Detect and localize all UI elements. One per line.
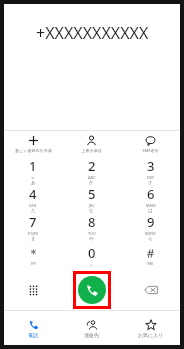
staticText: JKL — [89, 203, 95, 208]
button[interactable]: 0 — [62, 241, 121, 269]
staticText: PQRS — [28, 231, 39, 236]
staticText: 5 — [88, 185, 96, 203]
staticText: 連絡先 — [84, 332, 99, 338]
button[interactable]: ＊ — [4, 241, 62, 269]
button[interactable]: 5 — [62, 185, 121, 213]
staticText: や — [89, 236, 94, 241]
button[interactable]: 7 — [4, 213, 62, 241]
button[interactable]: 6 — [121, 185, 180, 213]
staticText: (P) — [31, 261, 36, 266]
staticText: MNO — [146, 203, 156, 208]
button[interactable]: 8 — [62, 213, 121, 241]
staticText: か — [89, 180, 94, 185]
button[interactable]: 2 — [62, 157, 121, 185]
staticText: GHI — [29, 203, 37, 208]
button[interactable]: 上書き保存 — [62, 131, 121, 157]
staticText: TUV — [88, 231, 96, 236]
staticText: + — [90, 262, 93, 267]
staticText: DEF — [147, 175, 155, 180]
staticText: 2 — [88, 157, 96, 175]
button[interactable]: 削除 — [136, 275, 166, 305]
button[interactable]: 4 — [4, 185, 62, 213]
staticText: ABC — [88, 175, 96, 180]
button[interactable]: 3 — [121, 157, 180, 185]
staticText: 4 — [29, 185, 37, 203]
button[interactable]: 発信 — [78, 276, 106, 304]
staticText: (W) — [147, 261, 154, 266]
staticText: 3 — [147, 157, 155, 175]
staticText: は — [148, 208, 153, 213]
staticText: 上書き保存 — [81, 148, 102, 153]
staticText: な — [89, 208, 94, 213]
staticText: ま — [31, 236, 36, 241]
button[interactable]: SMS送信 — [121, 131, 180, 157]
button[interactable]: 連絡先 — [62, 311, 121, 345]
staticText: 9 — [147, 213, 155, 231]
staticText: ＊ — [27, 245, 40, 261]
button[interactable]: お気に入り — [121, 311, 180, 345]
staticText: 電話 — [28, 332, 38, 338]
staticText: ら — [148, 236, 153, 241]
staticText: ∞ — [31, 175, 35, 180]
staticText: +XXXXXXXXXXX — [36, 22, 149, 44]
staticText: あ — [31, 180, 36, 185]
staticText: 6 — [147, 185, 155, 203]
button[interactable]: ＃ — [121, 241, 180, 269]
button[interactable]: 電話 — [4, 311, 62, 345]
staticText: WXYZ — [145, 231, 156, 236]
staticText: 7 — [29, 213, 37, 231]
button[interactable]: 新しい連絡先を作成 — [4, 131, 62, 157]
staticText: SMS送信 — [142, 148, 159, 153]
button[interactable]: 1 — [4, 157, 62, 185]
staticText: 新しい連絡先を作成 — [15, 148, 52, 153]
staticText: 1 — [29, 157, 37, 175]
button[interactable]: Hide keypad — [18, 275, 48, 305]
staticText: 0 — [88, 244, 96, 262]
staticText: ＃ — [144, 245, 157, 261]
staticText: 8 — [88, 213, 96, 231]
staticText: さ — [148, 180, 153, 185]
staticText: た — [31, 208, 36, 213]
staticText: お気に入り — [138, 332, 164, 338]
button[interactable]: 9 — [121, 213, 180, 241]
